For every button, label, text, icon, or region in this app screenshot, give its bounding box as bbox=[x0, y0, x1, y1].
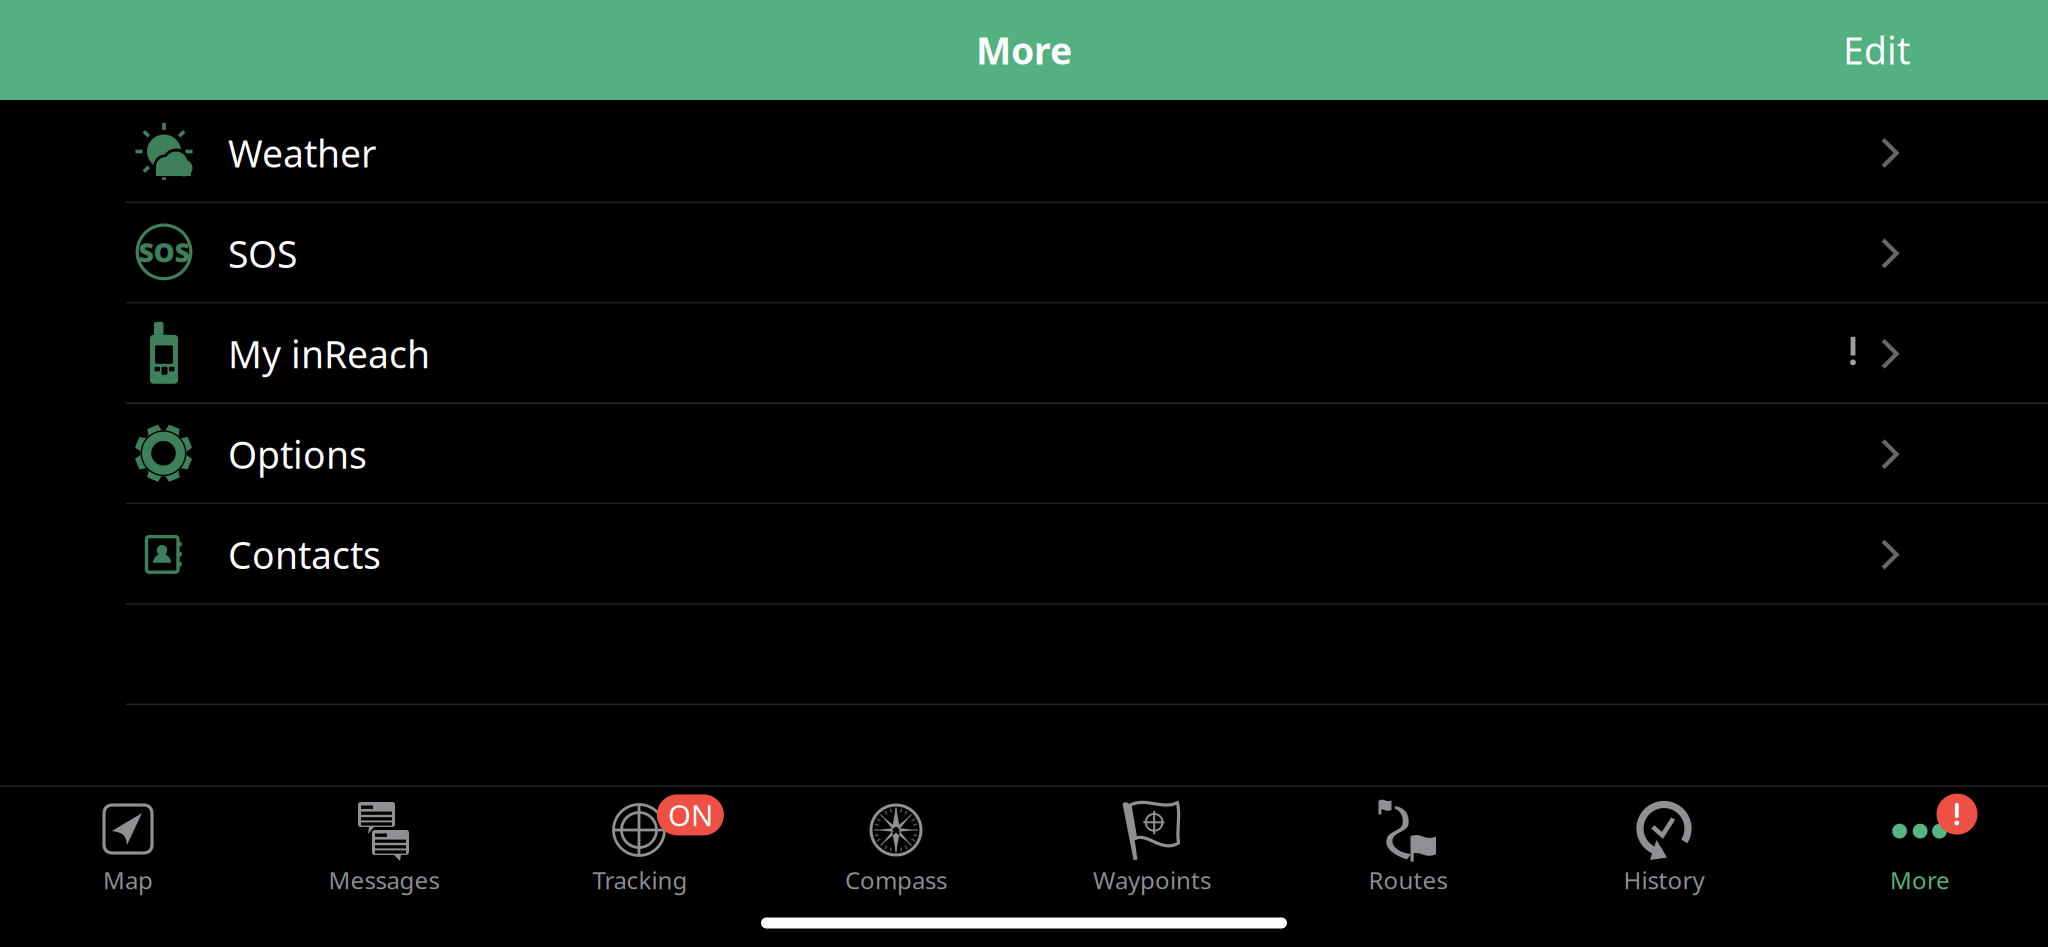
staticText: More bbox=[1890, 864, 1950, 896]
staticText: Messages bbox=[328, 864, 439, 896]
staticText: SOS bbox=[138, 234, 189, 270]
staticText: More bbox=[976, 25, 1072, 75]
button[interactable]: SOS bbox=[0, 203, 2048, 304]
staticText: Compass bbox=[845, 864, 947, 896]
staticText: Weather bbox=[228, 128, 376, 178]
button[interactable]: Weather bbox=[0, 103, 2048, 203]
button[interactable]: Compass bbox=[768, 787, 1024, 907]
staticText: Contacts bbox=[228, 530, 381, 579]
button[interactable]: Options bbox=[0, 404, 2048, 504]
button[interactable]: Routes bbox=[1280, 787, 1536, 907]
button[interactable]: My inReach bbox=[0, 304, 2048, 404]
staticText: History bbox=[1623, 864, 1704, 896]
staticText: Routes bbox=[1368, 864, 1447, 896]
button[interactable]: ON bbox=[512, 787, 768, 907]
staticText: My inReach bbox=[228, 329, 430, 379]
button[interactable]: Map bbox=[0, 787, 256, 907]
button[interactable]: Messages bbox=[256, 787, 512, 907]
staticText: Edit bbox=[1843, 25, 1910, 75]
staticText: SOS bbox=[228, 229, 297, 278]
button[interactable]: History bbox=[1536, 787, 1792, 907]
staticText: Waypoints bbox=[1093, 864, 1211, 896]
staticText: ON bbox=[668, 795, 713, 834]
button[interactable]: Contacts bbox=[0, 504, 2048, 605]
staticText: Map bbox=[103, 864, 153, 896]
button[interactable]: Waypoints bbox=[1024, 787, 1280, 907]
staticText: Tracking bbox=[592, 864, 687, 896]
staticText: Options bbox=[228, 429, 367, 479]
button[interactable]: Edit bbox=[1803, 0, 2048, 100]
button[interactable]: More bbox=[1792, 787, 2048, 907]
